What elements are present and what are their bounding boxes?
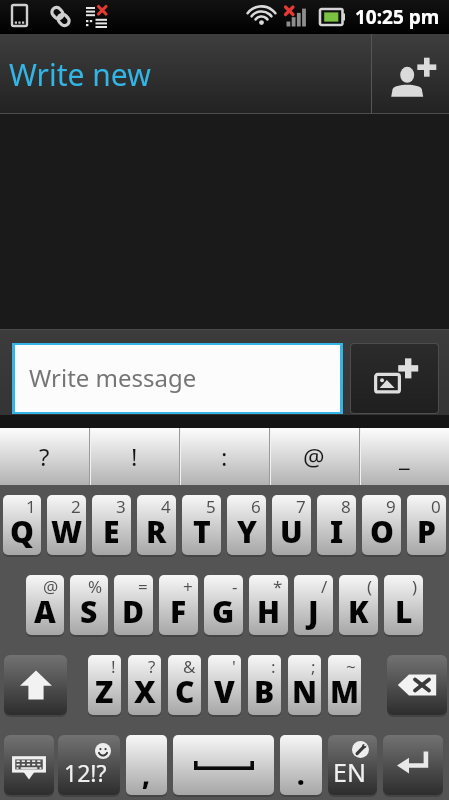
staticText: : xyxy=(271,655,276,678)
staticText: N xyxy=(292,671,318,712)
staticText: * xyxy=(273,575,283,598)
staticText: S xyxy=(80,591,98,632)
button[interactable]: 6 xyxy=(227,495,266,555)
button[interactable]: 9 xyxy=(362,495,401,555)
staticText: 1 xyxy=(26,495,36,518)
staticText: H xyxy=(257,591,280,632)
staticText: 12!? xyxy=(64,757,107,788)
button[interactable]: 8 xyxy=(317,495,356,555)
staticText: ~ xyxy=(346,655,356,678)
staticText: V xyxy=(214,671,235,712)
button[interactable]: ; xyxy=(288,655,321,715)
staticText: E xyxy=(103,511,120,552)
staticText: I xyxy=(330,511,344,552)
button[interactable]: ! xyxy=(88,655,121,715)
button[interactable]: & xyxy=(168,655,201,715)
staticText: - xyxy=(232,575,238,598)
staticText: W xyxy=(51,511,83,552)
button[interactable]: @ xyxy=(26,575,64,635)
staticText: G xyxy=(212,591,235,632)
button[interactable]: Space xyxy=(173,735,274,795)
staticText: ' xyxy=(232,655,236,678)
button[interactable]: - xyxy=(204,575,243,635)
staticText: . xyxy=(297,757,305,792)
staticText: , xyxy=(142,757,151,792)
staticText: 7 xyxy=(296,495,306,518)
staticText: 10:25 pm xyxy=(355,4,440,30)
staticText: / xyxy=(321,575,328,598)
button[interactable]: . xyxy=(280,735,322,795)
staticText: _ xyxy=(399,440,410,473)
button[interactable]: 4 xyxy=(137,495,176,555)
button[interactable]: 7 xyxy=(272,495,311,555)
staticText: J xyxy=(308,591,319,632)
button[interactable]: 0 xyxy=(407,495,446,555)
button[interactable]: , xyxy=(126,735,167,795)
staticText: D xyxy=(122,591,145,632)
button[interactable]: 2 xyxy=(47,495,86,555)
button[interactable]: ' xyxy=(208,655,241,715)
staticText: 8 xyxy=(341,495,351,518)
staticText: Y xyxy=(237,511,257,552)
button[interactable]: % xyxy=(70,575,108,635)
button[interactable]: Hide keyboard xyxy=(4,735,54,795)
button[interactable]: / xyxy=(294,575,333,635)
button[interactable]: Backspace xyxy=(387,655,447,715)
staticText: ( xyxy=(367,575,373,598)
staticText: EN xyxy=(333,755,366,789)
staticText: R xyxy=(146,511,167,552)
staticText: B xyxy=(254,671,275,712)
staticText: P xyxy=(417,511,436,552)
staticText: % xyxy=(88,575,103,598)
button[interactable]: ! xyxy=(89,428,179,485)
button[interactable]: Enter xyxy=(383,735,443,795)
staticText: T xyxy=(193,511,211,552)
staticText: ? xyxy=(39,440,50,473)
staticText: Write new xyxy=(9,54,151,95)
button[interactable]: : xyxy=(248,655,281,715)
button[interactable]: Change language xyxy=(328,735,377,795)
staticText: U xyxy=(280,511,303,552)
button[interactable]: ~ xyxy=(328,655,361,715)
button[interactable]: : xyxy=(179,428,269,485)
button[interactable]: Shift xyxy=(4,655,67,715)
staticText: ! xyxy=(131,440,138,473)
staticText: 4 xyxy=(161,495,171,518)
button[interactable]: Write message xyxy=(15,345,340,412)
staticText: ) xyxy=(412,575,418,598)
button[interactable]: 3 xyxy=(92,495,131,555)
button[interactable]: 1 xyxy=(3,495,41,555)
staticText: & xyxy=(183,655,196,678)
button[interactable]: ? xyxy=(128,655,161,715)
staticText: F xyxy=(170,591,187,632)
button[interactable]: ? xyxy=(0,428,89,485)
button[interactable]: * xyxy=(249,575,288,635)
staticText: M xyxy=(330,671,360,712)
staticText: @ xyxy=(303,440,325,473)
staticText: 2 xyxy=(71,495,81,518)
staticText: A xyxy=(34,591,56,632)
button[interactable]: _ xyxy=(359,428,449,485)
button[interactable]: Symbols xyxy=(58,735,120,795)
staticText: Q xyxy=(10,511,34,552)
button[interactable]: + xyxy=(159,575,198,635)
button[interactable]: @ xyxy=(269,428,359,485)
button[interactable]: Attach picture xyxy=(351,344,438,413)
button[interactable]: 5 xyxy=(182,495,221,555)
staticText: + xyxy=(183,575,193,598)
staticText: 3 xyxy=(116,495,126,518)
staticText: 5 xyxy=(206,495,216,518)
staticText: Write message xyxy=(29,361,197,394)
button[interactable]: ( xyxy=(339,575,378,635)
staticText: @ xyxy=(43,575,59,598)
staticText: = xyxy=(138,575,148,598)
button[interactable]: = xyxy=(114,575,153,635)
staticText: O xyxy=(370,511,394,552)
staticText: Z xyxy=(95,671,114,712)
button[interactable]: ) xyxy=(384,575,423,635)
button[interactable]: Add recipient xyxy=(372,34,449,114)
staticText: 0 xyxy=(431,495,441,518)
staticText: C xyxy=(175,671,195,712)
staticText: K xyxy=(348,591,369,632)
staticText: ? xyxy=(148,655,156,678)
